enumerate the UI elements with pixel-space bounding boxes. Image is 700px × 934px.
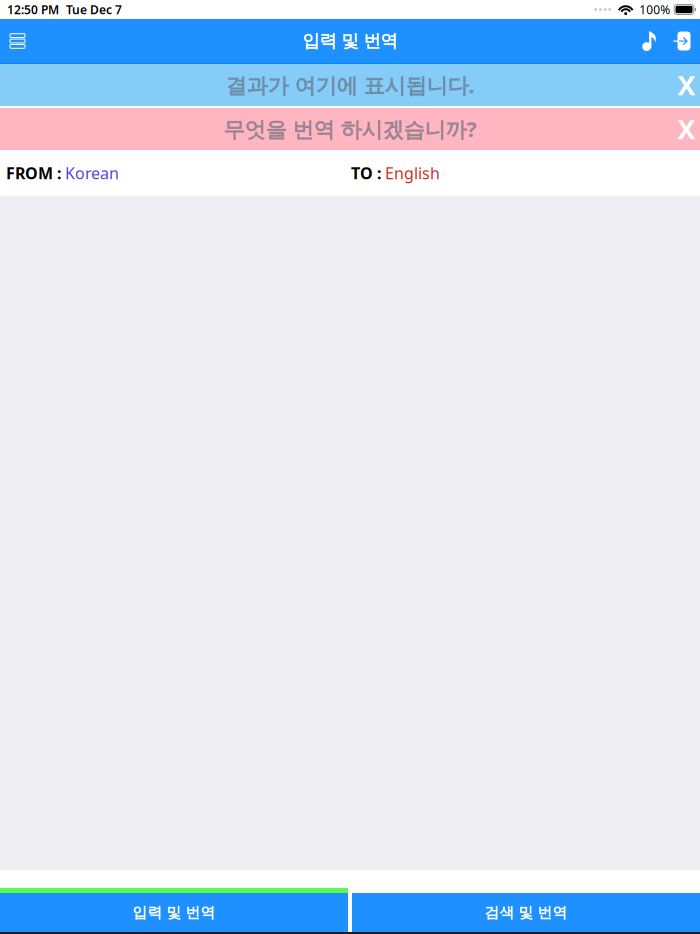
staticText: FROM : [6,162,61,184]
button[interactable]: Clear [673,108,700,150]
button[interactable]: TO : [346,150,691,196]
staticText: 결과가 여기에 표시됩니다. [225,71,474,99]
button[interactable]: Music [633,18,665,63]
staticText: TO : [351,162,381,184]
staticText: 12:50 PM [7,1,59,17]
staticText: 입력 및 번역 [132,903,215,921]
staticText: Korean [61,162,119,184]
staticText: 무엇을 번역 하시겠습니까? [223,115,476,143]
staticText: English [381,162,440,184]
button[interactable]: Clear [673,64,700,106]
staticText: X [677,111,695,147]
staticText: 입력 및 번역 [302,30,397,52]
button[interactable]: 입력 및 번역 [0,888,348,932]
staticText: X [677,67,695,103]
staticText: 100% [639,1,670,17]
button[interactable]: Sign in [665,18,696,63]
button[interactable]: 검색 및 번역 [352,888,700,932]
staticText: 검색 및 번역 [484,903,567,921]
button[interactable]: FROM : [0,150,346,196]
button[interactable]: Menu [2,18,33,63]
staticText: Tue Dec 7 [66,1,122,17]
